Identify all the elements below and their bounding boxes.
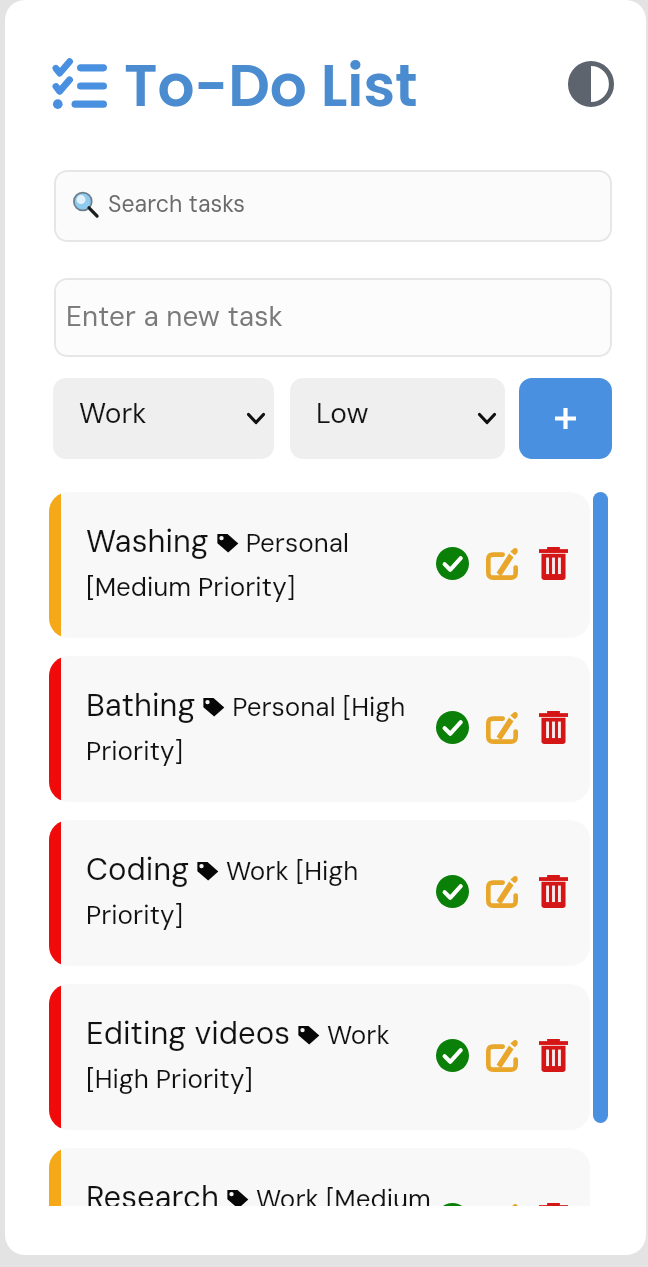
button[interactable]: Delete task: [531, 705, 575, 749]
button[interactable]: Delete task: [531, 869, 575, 913]
staticText: Bathing # Personal [High Priority]: [86, 685, 456, 768]
staticText: To-Do List: [124, 45, 418, 126]
staticText: Enter a new task: [66, 298, 283, 334]
staticText: Editing videos # Work [High Priority]: [86, 1013, 456, 1096]
button[interactable]: Edit task: [480, 1033, 524, 1077]
button[interactable]: Delete task: [531, 541, 575, 585]
button[interactable]: Edit task: [480, 705, 524, 749]
button[interactable]: Enter a new task: [54, 278, 612, 357]
button[interactable]: Edit task: [480, 869, 524, 913]
button[interactable]: Bathing # Personal [High Priority]: [49, 656, 590, 802]
button[interactable]: Edit task: [480, 1197, 524, 1206]
button[interactable]: Delete task: [531, 1197, 575, 1206]
staticText: Work: [79, 395, 147, 431]
staticText: Washing # Personal [Medium Priority]: [86, 521, 456, 604]
staticText: Low: [316, 395, 369, 431]
button[interactable]: Work: [53, 378, 274, 459]
button[interactable]: Mark complete: [430, 869, 474, 913]
button[interactable]: Delete task: [531, 1033, 575, 1077]
button[interactable]: Toggle dark mode: [566, 59, 616, 109]
staticText: Search tasks: [108, 189, 245, 219]
button[interactable]: Editing videos # Work [High Priority]: [49, 984, 590, 1130]
button[interactable]: Search tasks: [54, 170, 612, 242]
button[interactable]: Mark complete: [430, 705, 474, 749]
button[interactable]: Mark complete: [430, 1033, 474, 1077]
staticText: Coding # Work [High Priority]: [86, 849, 456, 932]
button[interactable]: Research # Work [Medium Priority]: [49, 1148, 590, 1206]
button[interactable]: Mark complete: [430, 541, 474, 585]
button[interactable]: Washing # Personal [Medium Priority]: [49, 492, 590, 638]
button[interactable]: Mark complete: [430, 1197, 474, 1206]
staticText: Research # Work [Medium Priority]: [86, 1177, 456, 1206]
button[interactable]: Low: [290, 378, 505, 459]
button[interactable]: Edit task: [480, 541, 524, 585]
button[interactable]: Add task: [519, 378, 612, 459]
button[interactable]: Coding # Work [High Priority]: [49, 820, 590, 966]
